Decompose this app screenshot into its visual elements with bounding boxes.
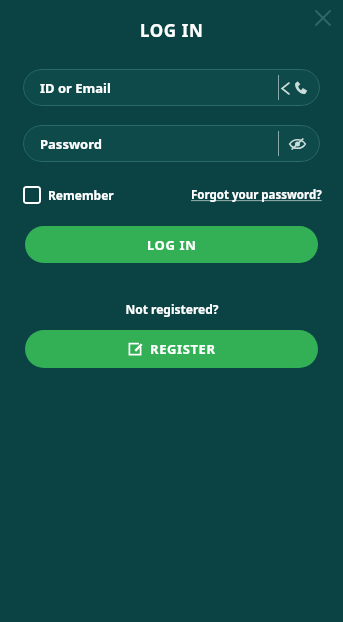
- button[interactable]: Password: [23, 125, 320, 162]
- button[interactable]: Forgot your password?: [191, 187, 322, 203]
- staticText: Password: [40, 135, 102, 153]
- button[interactable]: LOG IN: [25, 226, 318, 263]
- button[interactable]: Show password: [285, 132, 309, 156]
- staticText: Remember: [48, 187, 114, 203]
- button[interactable]: Select country code: [282, 81, 308, 95]
- staticText: LOG IN: [140, 19, 204, 42]
- button[interactable]: Close: [310, 5, 336, 31]
- button[interactable]: ID or Email: [23, 69, 320, 106]
- staticText: LOG IN: [147, 236, 197, 254]
- button[interactable]: Remember: [23, 186, 114, 204]
- staticText: Forgot your password?: [191, 187, 322, 203]
- staticText: REGISTER: [150, 340, 216, 358]
- button[interactable]: REGISTER: [25, 330, 318, 368]
- staticText: ID or Email: [40, 79, 111, 97]
- staticText: Not registered?: [125, 301, 219, 317]
